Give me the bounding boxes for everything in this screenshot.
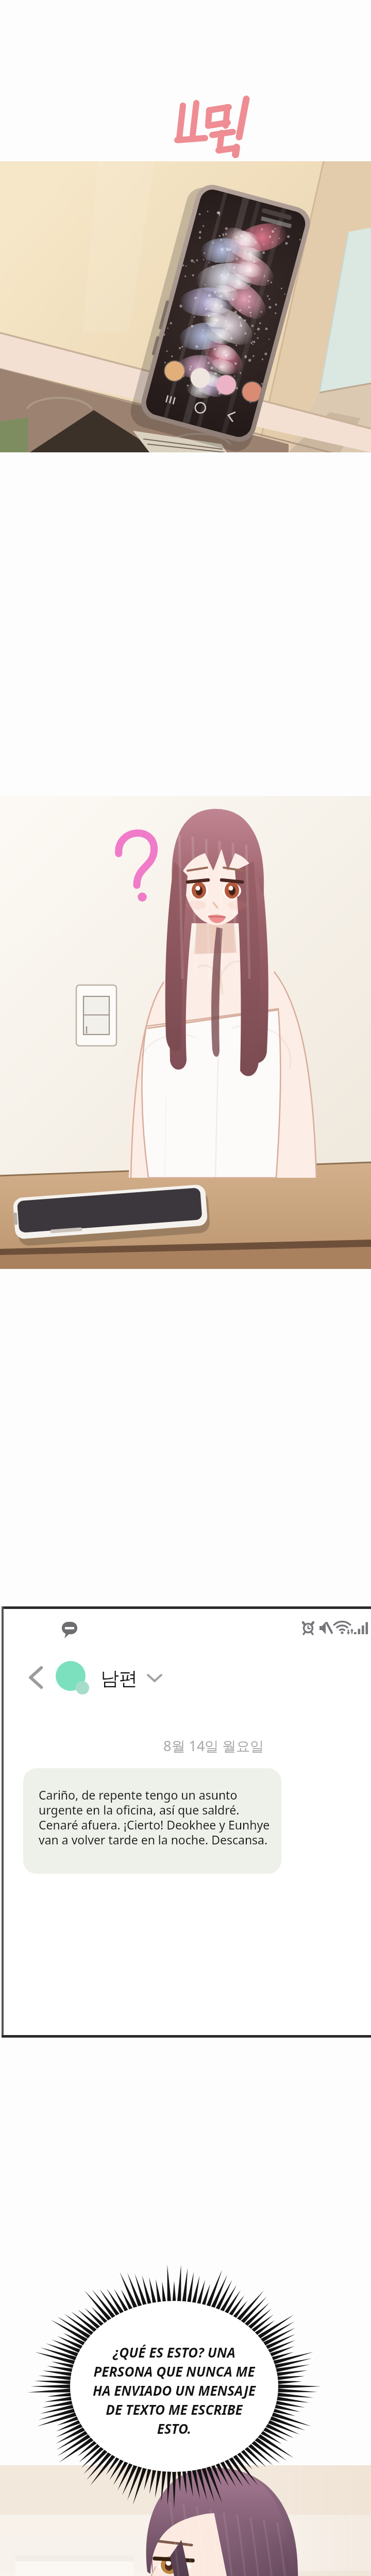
button[interactable]: 남편	[100, 1660, 161, 1696]
staticText: Cariño, de repente tengo un asunto urgen…	[39, 1787, 277, 1848]
staticText: ¿QUÉ ES ESTO? UNA PERSONA QUE NUNCA ME H…	[71, 2343, 277, 2438]
button[interactable]: Cariño, de repente tengo un asunto urgen…	[23, 1768, 281, 1874]
button[interactable]: Back	[22, 1663, 51, 1692]
staticText: 남편	[100, 1667, 138, 1690]
staticText: 8월 14일 월요일	[163, 1736, 264, 1755]
button[interactable]	[56, 1661, 90, 1695]
